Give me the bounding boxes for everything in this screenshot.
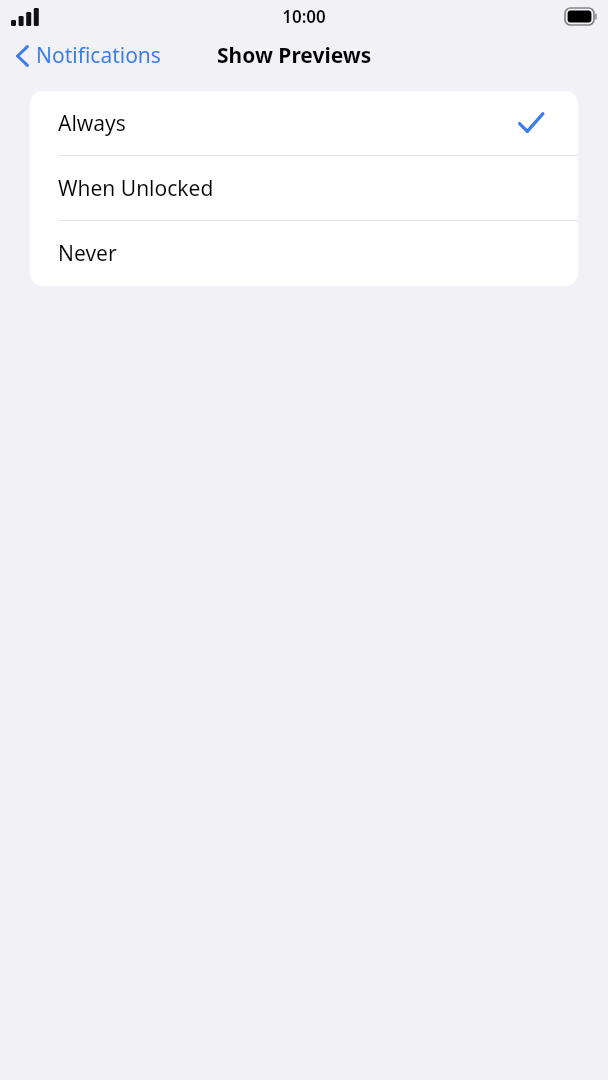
button[interactable]: When Unlocked: [30, 156, 578, 221]
staticText: Notifications: [36, 41, 161, 70]
button[interactable]: Back to Notifications: [0, 36, 171, 75]
staticText: Never: [58, 239, 117, 268]
button[interactable]: Always: [30, 91, 578, 156]
staticText: Show Previews: [217, 41, 372, 70]
staticText: When Unlocked: [58, 174, 214, 203]
button[interactable]: Never: [30, 221, 578, 286]
other: Back to Notifications: [16, 45, 29, 67]
staticText: Always: [58, 109, 126, 138]
other: Selected: [518, 110, 544, 136]
staticText: 10:00: [282, 5, 326, 28]
